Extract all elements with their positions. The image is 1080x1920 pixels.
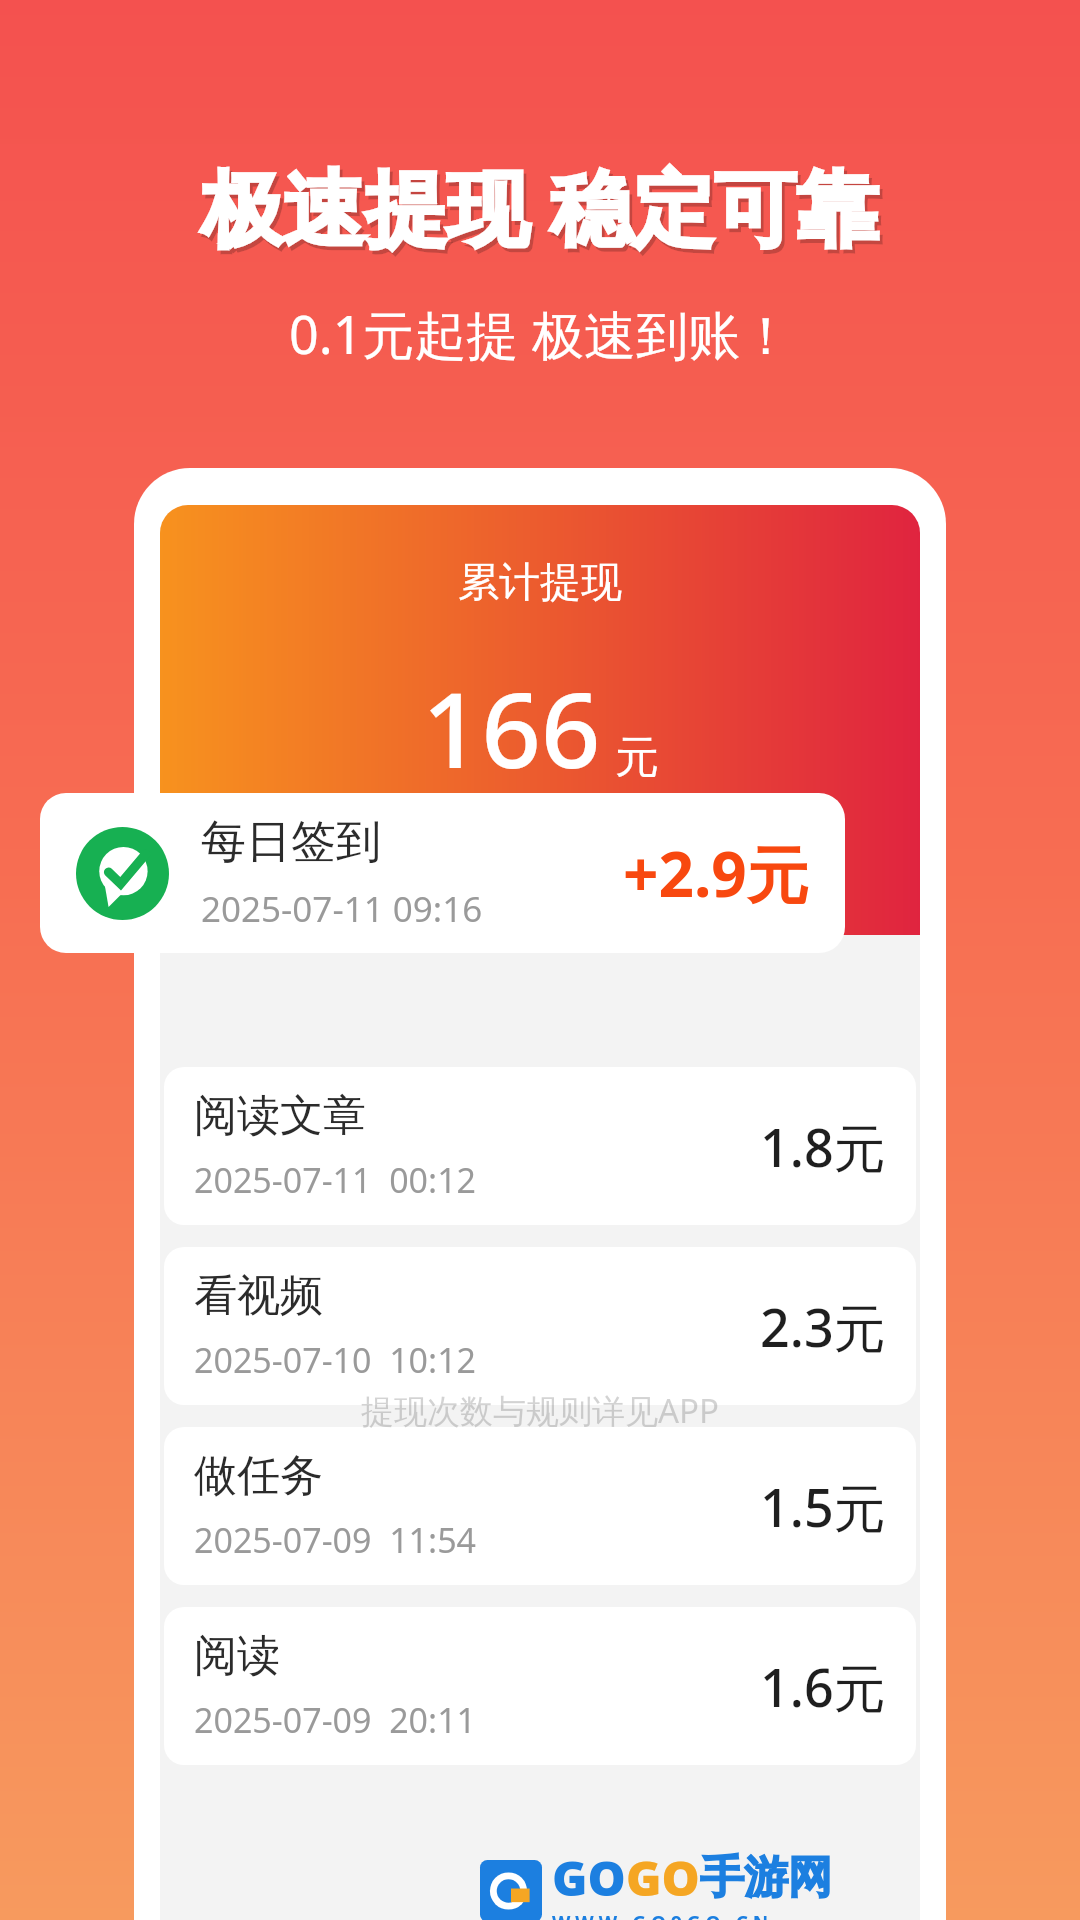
staticText: 2025-07-10 10:12 xyxy=(194,1337,477,1383)
other: 每日签到 xyxy=(76,827,169,920)
button[interactable]: 看视频 xyxy=(164,1247,916,1405)
staticText: W W W . G O 9 G O . C N xyxy=(552,1910,769,1920)
staticText: 极速提现 稳定可靠 xyxy=(201,150,879,262)
staticText: 0.1元起提 极速到账！ xyxy=(289,298,792,369)
staticText: 做任务 xyxy=(194,1449,323,1503)
staticText: +2.9元 xyxy=(623,831,809,916)
staticText: 累计提现 xyxy=(458,557,622,609)
staticText: 极速提现 稳定可靠 xyxy=(204,154,882,266)
staticText: 1.5元 xyxy=(760,1471,886,1542)
button[interactable]: 做任务 xyxy=(164,1427,916,1585)
staticText: 166 xyxy=(422,657,601,799)
staticText: 2025-07-11 00:12 xyxy=(194,1157,477,1203)
button[interactable]: 阅读 xyxy=(164,1607,916,1765)
staticText: 1.6元 xyxy=(760,1651,886,1722)
staticText: 阅读 xyxy=(194,1629,280,1683)
staticText: 提现次数与规则详见APP xyxy=(361,1388,720,1433)
staticText: 2025-07-09 20:11 xyxy=(194,1697,477,1743)
staticText: 元 xyxy=(615,730,659,785)
staticText: 2025-07-11 09:16 xyxy=(201,885,483,933)
staticText: 1.8元 xyxy=(760,1111,886,1182)
staticText: GO xyxy=(626,1845,700,1910)
button[interactable]: 每日签到 xyxy=(40,793,845,953)
button[interactable]: 阅读文章 xyxy=(164,1067,916,1225)
staticText: 2025-07-09 11:54 xyxy=(194,1517,477,1563)
staticText: 2.3元 xyxy=(760,1291,886,1362)
staticText: 阅读文章 xyxy=(194,1089,366,1143)
staticText: 手游网 xyxy=(700,1850,832,1905)
staticText: GO xyxy=(552,1845,626,1910)
staticText: 每日签到 xyxy=(201,814,381,871)
staticText: 看视频 xyxy=(194,1269,323,1323)
